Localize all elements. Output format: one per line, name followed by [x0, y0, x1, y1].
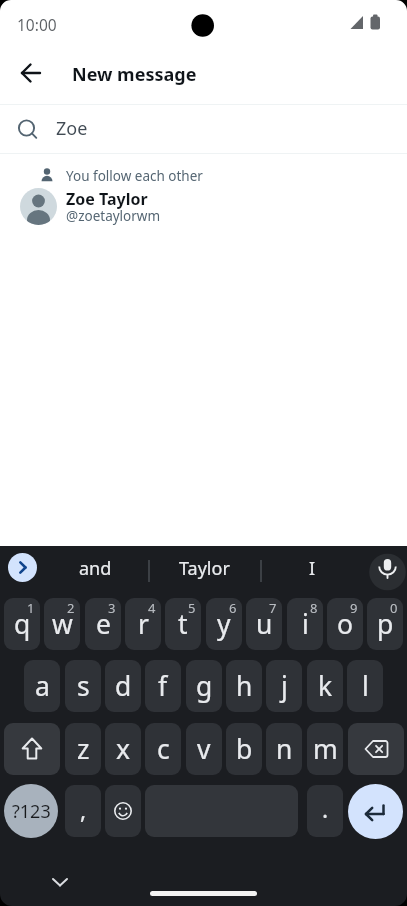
staticText: d — [115, 668, 132, 704]
staticText: 6 — [229, 599, 237, 617]
staticText: p — [377, 606, 394, 642]
staticText: Taylor — [179, 556, 230, 581]
button[interactable]: b — [226, 723, 262, 775]
button[interactable]: x — [105, 723, 141, 775]
button[interactable] — [348, 723, 404, 775]
staticText: 10:00 — [17, 14, 57, 35]
staticText: s — [77, 668, 90, 704]
staticText: h — [236, 668, 253, 704]
button[interactable]: q — [4, 598, 40, 650]
button[interactable]: z — [65, 723, 101, 775]
staticText: @zoetaylorwm — [66, 207, 161, 225]
button[interactable]: I — [260, 546, 364, 590]
button[interactable]: Zoe — [0, 105, 407, 153]
button[interactable]: c — [145, 723, 181, 775]
button[interactable] — [10, 52, 52, 94]
staticText: q — [14, 606, 31, 642]
button[interactable]: k — [307, 660, 343, 712]
button[interactable]: Zoe Taylor — [0, 188, 407, 238]
staticText: b — [236, 731, 253, 767]
staticText: z — [77, 731, 90, 767]
button[interactable]: g — [186, 660, 222, 712]
staticText: Zoe — [56, 116, 88, 141]
button[interactable]: . — [307, 785, 343, 837]
button[interactable] — [8, 553, 37, 582]
staticText: , — [80, 794, 87, 825]
button[interactable] — [105, 785, 141, 837]
staticText: 5 — [188, 599, 196, 617]
button[interactable] — [4, 723, 60, 775]
button[interactable] — [150, 891, 257, 896]
staticText: 3 — [108, 599, 116, 617]
button[interactable]: m — [307, 723, 343, 775]
button[interactable]: p — [367, 598, 403, 650]
button[interactable]: a — [24, 660, 60, 712]
button[interactable]: Taylor — [148, 546, 260, 590]
button[interactable] — [348, 784, 403, 839]
button[interactable]: You follow each other — [0, 162, 407, 188]
staticText: Zoe Taylor — [66, 188, 148, 210]
staticText: i — [302, 606, 309, 642]
staticText: a — [35, 668, 50, 704]
staticText: 9 — [350, 599, 358, 617]
button[interactable]: i — [287, 598, 323, 650]
button[interactable]: w — [44, 598, 80, 650]
button[interactable]: r — [125, 598, 161, 650]
button[interactable]: e — [85, 598, 121, 650]
staticText: You follow each other — [66, 167, 203, 185]
staticText: o — [337, 606, 354, 642]
button[interactable]: h — [226, 660, 262, 712]
button[interactable]: and — [42, 546, 148, 590]
staticText: f — [158, 668, 168, 704]
button[interactable]: d — [105, 660, 141, 712]
button[interactable] — [40, 868, 80, 898]
staticText: t — [178, 606, 188, 642]
staticText: j — [281, 668, 288, 704]
button[interactable]: j — [266, 660, 302, 712]
staticText: . — [322, 793, 329, 824]
button[interactable]: t — [165, 598, 201, 650]
button[interactable]: n — [266, 723, 302, 775]
staticText: r — [138, 606, 149, 642]
staticText: n — [276, 731, 293, 767]
staticText: e — [96, 606, 111, 642]
staticText: and — [79, 556, 112, 581]
staticText: k — [318, 668, 333, 704]
button[interactable]: , — [65, 785, 101, 837]
button[interactable]: ?123 — [4, 784, 58, 838]
staticText: u — [256, 606, 273, 642]
button[interactable]: f — [145, 660, 181, 712]
staticText: l — [362, 668, 369, 704]
staticText: 0 — [390, 599, 398, 617]
staticText: ?123 — [12, 799, 51, 824]
staticText: 7 — [269, 599, 277, 617]
button[interactable]: v — [186, 723, 222, 775]
button[interactable]: u — [246, 598, 282, 650]
staticText: I — [309, 556, 316, 581]
button[interactable]: l — [347, 660, 383, 712]
staticText: w — [52, 606, 73, 642]
staticText: y — [217, 606, 231, 642]
staticText: 1 — [27, 599, 35, 617]
staticText: 2 — [67, 599, 75, 617]
staticText: c — [157, 731, 170, 767]
staticText: g — [196, 668, 213, 704]
button[interactable] — [364, 546, 407, 596]
staticText: x — [116, 731, 131, 767]
staticText: 8 — [310, 599, 318, 617]
staticText: New message — [72, 62, 197, 87]
button[interactable]: s — [65, 660, 101, 712]
button[interactable]: y — [206, 598, 242, 650]
staticText: 4 — [148, 599, 156, 617]
staticText: m — [313, 731, 338, 767]
staticText: v — [197, 731, 211, 767]
button[interactable]: o — [327, 598, 363, 650]
